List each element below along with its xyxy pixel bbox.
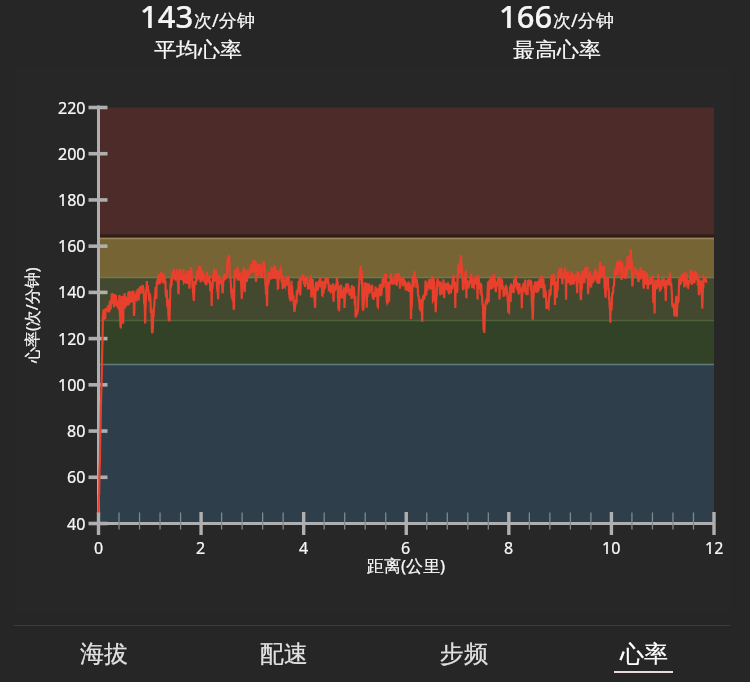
button[interactable]: 143	[18, 0, 377, 64]
staticText: 平均心率	[154, 37, 242, 59]
staticText: 60	[67, 466, 86, 488]
staticText: 距离(公里)	[367, 554, 446, 576]
staticText: 海拔	[80, 639, 128, 669]
staticText: 8	[504, 537, 514, 559]
staticText: 6	[401, 537, 411, 559]
staticText: 120	[58, 328, 86, 350]
staticText: 次/分钟	[194, 8, 255, 33]
staticText: 次/分钟	[553, 8, 614, 33]
staticText: 2	[196, 537, 206, 559]
button[interactable]: 166	[377, 0, 736, 64]
staticText: 160	[58, 235, 86, 257]
staticText: 步频	[440, 639, 488, 669]
staticText: 220	[58, 97, 86, 119]
staticText: 80	[67, 420, 86, 442]
staticText: 200	[58, 143, 86, 165]
button[interactable]: 配速	[193, 626, 373, 682]
staticText: 100	[58, 374, 86, 396]
button[interactable]: 海拔	[14, 626, 193, 682]
staticText: 143	[140, 0, 194, 37]
button[interactable]: 心率	[553, 626, 733, 682]
staticText: 40	[67, 513, 86, 535]
staticText: 配速	[260, 639, 308, 669]
staticText: 166	[499, 0, 553, 37]
staticText: 最高心率	[513, 37, 601, 59]
staticText: 140	[58, 281, 86, 303]
staticText: 0	[94, 537, 104, 559]
staticText: 心率	[620, 639, 668, 669]
staticText: 心率(次/分钟)	[21, 267, 43, 363]
staticText: 4	[299, 537, 309, 559]
staticText: 10	[602, 537, 621, 559]
staticText: 12	[705, 537, 724, 559]
staticText: 180	[58, 189, 86, 211]
button[interactable]: 步频	[373, 626, 553, 682]
